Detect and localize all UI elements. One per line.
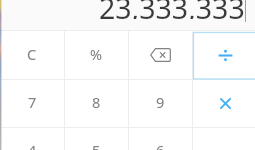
staticText: C xyxy=(27,44,37,64)
button[interactable]: Divide xyxy=(192,31,255,79)
other: Multiply xyxy=(220,98,231,109)
staticText: 6 xyxy=(156,140,165,150)
other: Backspace xyxy=(150,48,171,62)
button[interactable]: 4 xyxy=(0,127,64,150)
button[interactable]: 7 xyxy=(0,79,64,127)
button[interactable]: 6 xyxy=(128,127,192,150)
button[interactable]: % xyxy=(64,31,128,79)
staticText: 5 xyxy=(92,140,101,150)
button[interactable]: Minus xyxy=(192,127,255,150)
staticText: 8 xyxy=(92,92,101,112)
staticText: 23,333,333 xyxy=(99,0,245,19)
button[interactable]: 9 xyxy=(128,79,192,127)
button[interactable]: 8 xyxy=(64,79,128,127)
staticText: % xyxy=(90,44,103,64)
staticText: 7 xyxy=(28,92,37,112)
button[interactable]: Multiply xyxy=(192,79,255,127)
button[interactable]: 5 xyxy=(64,127,128,150)
other: Divide xyxy=(218,49,233,62)
staticText: 4 xyxy=(28,140,37,150)
staticText: 9 xyxy=(156,92,165,112)
button[interactable]: C xyxy=(0,31,64,79)
button[interactable]: Backspace xyxy=(128,31,192,79)
